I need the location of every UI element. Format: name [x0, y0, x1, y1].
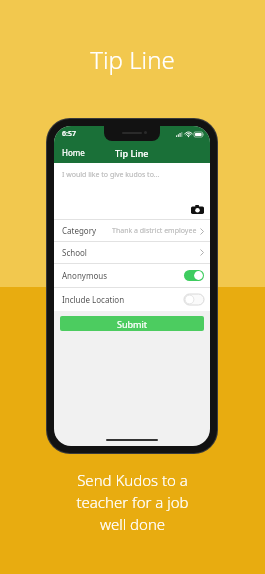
staticText: School — [62, 247, 87, 258]
staticText: I would like to give kudos to... — [62, 170, 160, 180]
staticText: Tip Line — [115, 147, 149, 159]
staticText: Include Location — [62, 294, 125, 305]
staticText: Thank a district employee — [112, 226, 197, 236]
staticText: Send Kudos to a teacher for a job well d… — [34, 470, 231, 535]
button[interactable]: School — [54, 242, 210, 263]
button[interactable]: Include Location — [184, 294, 204, 305]
staticText: Submit — [117, 318, 148, 330]
button[interactable]: Anonymous — [184, 270, 204, 281]
staticText: Anonymous — [62, 270, 108, 281]
staticText: Tip Line — [90, 43, 175, 76]
button[interactable]: Submit — [60, 316, 204, 331]
button[interactable]: Home — [54, 147, 85, 158]
staticText: Category — [62, 225, 97, 236]
button[interactable]: Add photo — [190, 202, 204, 216]
button[interactable]: I would like to give kudos to... — [54, 163, 210, 219]
staticText: 6:57 — [62, 129, 76, 139]
button[interactable]: Category — [54, 220, 210, 241]
